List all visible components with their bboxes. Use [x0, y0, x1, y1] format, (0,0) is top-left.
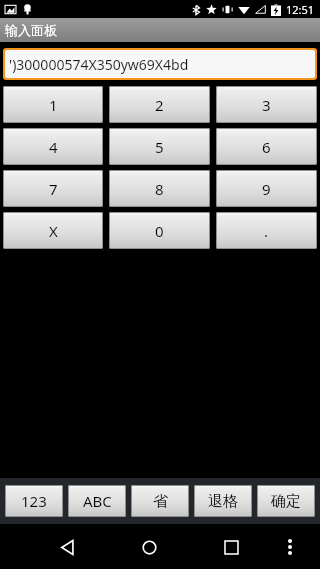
- staticText: 输入面板: [5, 22, 57, 38]
- button[interactable]: 9: [216, 170, 317, 207]
- staticText: 12:51: [286, 2, 315, 17]
- button[interactable]: 8: [109, 170, 210, 207]
- staticText: 2: [155, 95, 164, 115]
- staticText: 确定: [271, 492, 301, 511]
- button[interactable]: 4: [3, 128, 103, 165]
- staticText: ')300000574X350yw69X4bd: [9, 55, 189, 74]
- staticText: 123: [21, 491, 47, 511]
- staticText: 0: [155, 221, 164, 241]
- staticText: 8: [155, 179, 164, 199]
- button[interactable]: Recent apps: [211, 527, 251, 567]
- button[interactable]: 3: [216, 86, 317, 123]
- staticText: 5: [155, 137, 164, 157]
- staticText: ABC: [83, 491, 112, 511]
- button[interactable]: 退格: [194, 485, 252, 517]
- staticText: .: [264, 221, 269, 241]
- button[interactable]: More options: [274, 531, 306, 563]
- staticText: 7: [49, 179, 58, 199]
- staticText: X: [49, 221, 58, 241]
- staticText: 退格: [208, 492, 238, 511]
- staticText: 9: [262, 179, 271, 199]
- button[interactable]: 确定: [257, 485, 315, 517]
- button[interactable]: 省: [131, 485, 189, 517]
- staticText: 4: [49, 137, 58, 157]
- button[interactable]: 123: [5, 485, 63, 517]
- staticText: 6: [262, 137, 271, 157]
- button[interactable]: Home: [129, 527, 169, 567]
- staticText: 3: [262, 95, 271, 115]
- button[interactable]: 5: [109, 128, 210, 165]
- staticText: 省: [153, 492, 168, 511]
- button[interactable]: .: [216, 212, 317, 249]
- button[interactable]: ')300000574X350yw69X4bd: [5, 50, 315, 78]
- button[interactable]: ABC: [68, 485, 126, 517]
- button[interactable]: X: [3, 212, 103, 249]
- button[interactable]: 2: [109, 86, 210, 123]
- staticText: 1: [49, 95, 58, 115]
- button[interactable]: 0: [109, 212, 210, 249]
- button[interactable]: Back: [47, 527, 87, 567]
- button[interactable]: 7: [3, 170, 103, 207]
- button[interactable]: 1: [3, 86, 103, 123]
- button[interactable]: 6: [216, 128, 317, 165]
